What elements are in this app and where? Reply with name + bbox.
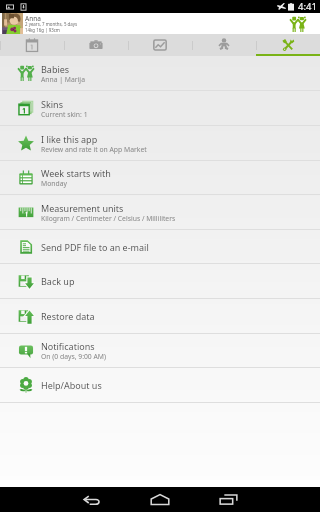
staticText: Babies (41, 63, 70, 75)
staticText: I like this app (41, 133, 98, 145)
button[interactable]: I like this app (0, 126, 320, 161)
staticText: Back up (41, 275, 75, 287)
staticText: On (0 days, 9:00 AM) (41, 352, 107, 361)
button[interactable]: Send PDF file to an e-mail (0, 230, 320, 264)
staticText: Review and rate it on App Market (41, 145, 147, 154)
button[interactable]: Recents (194, 487, 262, 512)
button[interactable]: Baby (192, 34, 256, 56)
staticText: Send PDF file to an e-mail (41, 241, 149, 253)
button[interactable]: Help/About us (0, 368, 320, 403)
button[interactable]: Tools (256, 34, 320, 56)
staticText: Anna | Marija (41, 75, 85, 84)
button[interactable]: Notifications (0, 334, 320, 368)
staticText: Measurement units (41, 202, 124, 214)
button[interactable]: Week starts with (0, 161, 320, 195)
button[interactable]: Skins (0, 91, 320, 126)
button[interactable]: Babies (0, 56, 320, 91)
staticText: Current skin: 1 (41, 110, 88, 119)
button[interactable]: Back up (0, 264, 320, 299)
staticText: Week starts with (41, 167, 111, 179)
staticText: Anna (25, 14, 41, 23)
button[interactable]: Charts (128, 34, 192, 56)
button[interactable]: Back (58, 487, 126, 512)
staticText: 14kg 16g | 93cm (25, 27, 60, 33)
staticText: Kilogram / Centimeter / Celsius / Millil… (41, 214, 176, 223)
staticText: Help/About us (41, 379, 102, 391)
staticText: Restore data (41, 310, 95, 322)
button[interactable]: Home (126, 487, 194, 512)
staticText: Monday (41, 179, 67, 188)
staticText: 4:41 (298, 0, 317, 13)
button[interactable]: Switch baby (276, 13, 320, 34)
staticText: 2 years, 7 months, 5 days (25, 21, 78, 27)
staticText: Skins (41, 98, 63, 110)
button[interactable]: Calendar (0, 34, 64, 56)
staticText: Notifications (41, 340, 95, 352)
button[interactable]: Restore data (0, 299, 320, 334)
button[interactable]: Photos (64, 34, 128, 56)
button[interactable]: Measurement units (0, 195, 320, 230)
